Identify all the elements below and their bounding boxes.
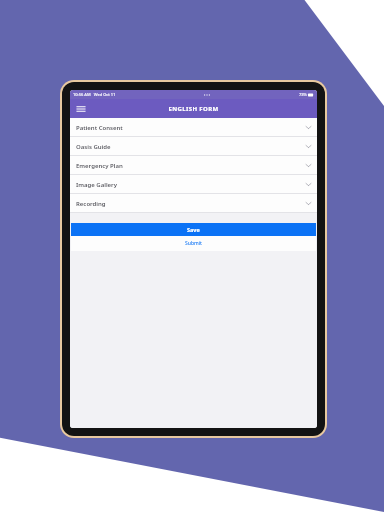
staticText: Image Gallery: [76, 181, 117, 189]
staticText: Recording: [76, 200, 106, 208]
staticText: 10:56 AM Wed Oct 11: [73, 92, 116, 97]
button[interactable]: Oasis Guide: [70, 137, 317, 156]
button[interactable]: Patient Consent: [70, 118, 317, 137]
staticText: Emergency Plan: [76, 162, 123, 170]
staticText: ENGLISH FORM: [168, 105, 219, 113]
button[interactable]: Emergency Plan: [70, 156, 317, 175]
staticText: Patient Consent: [76, 124, 123, 132]
button[interactable]: Submit: [71, 236, 316, 251]
staticText: 73%: [299, 92, 307, 97]
staticText: Save: [187, 226, 200, 233]
button[interactable]: Save: [71, 223, 316, 236]
button[interactable]: Open navigation menu: [74, 102, 87, 115]
staticText: Submit: [185, 240, 202, 247]
staticText: Oasis Guide: [76, 143, 111, 151]
button[interactable]: Image Gallery: [70, 175, 317, 194]
button[interactable]: Recording: [70, 194, 317, 213]
